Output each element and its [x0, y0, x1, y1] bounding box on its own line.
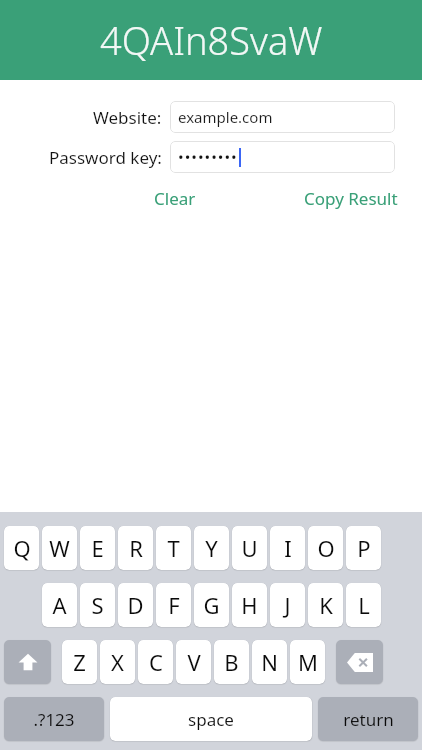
button[interactable]: M — [290, 640, 325, 684]
button[interactable]: K — [308, 583, 343, 627]
staticText: P — [357, 533, 371, 563]
button[interactable]: return — [318, 697, 418, 741]
staticText: Clear — [154, 187, 196, 210]
staticText: Y — [205, 533, 218, 563]
staticText: S — [91, 590, 104, 620]
staticText: V — [187, 647, 201, 677]
staticText: J — [284, 590, 291, 620]
staticText: E — [91, 533, 104, 563]
button[interactable]: E — [80, 526, 115, 570]
button[interactable]: Copy Result — [300, 183, 402, 214]
staticText: Copy Result — [304, 187, 398, 210]
staticText: Q — [13, 533, 31, 563]
staticText: F — [168, 590, 180, 620]
button[interactable]: H — [232, 583, 267, 627]
staticText: H — [241, 590, 258, 620]
button[interactable]: W — [42, 526, 77, 570]
staticText: D — [127, 590, 144, 620]
button[interactable]: G — [194, 583, 229, 627]
staticText: A — [52, 590, 67, 620]
staticText: W — [49, 533, 70, 563]
button[interactable]: C — [138, 640, 173, 684]
button[interactable]: Z — [62, 640, 97, 684]
button[interactable]: N — [252, 640, 287, 684]
staticText: U — [241, 533, 258, 563]
staticText: return — [343, 708, 394, 731]
staticText: example.com — [178, 107, 273, 127]
button[interactable]: I — [270, 526, 305, 570]
staticText: K — [319, 590, 333, 620]
staticText: G — [203, 590, 220, 620]
staticText: R — [129, 533, 143, 563]
button[interactable]: V — [176, 640, 211, 684]
button[interactable]: D — [118, 583, 153, 627]
button[interactable]: Shift — [4, 640, 51, 684]
button[interactable]: .?123 — [4, 697, 104, 741]
staticText: ••••••••• — [178, 147, 238, 167]
button[interactable]: Backspace — [336, 640, 383, 684]
staticText: B — [224, 647, 239, 677]
button[interactable]: example.com — [170, 101, 395, 133]
staticText: C — [149, 647, 163, 677]
staticText: X — [111, 647, 124, 677]
button[interactable]: U — [232, 526, 267, 570]
staticText: N — [261, 647, 278, 677]
button[interactable]: space — [110, 697, 312, 741]
button[interactable]: Q — [4, 526, 39, 570]
staticText: L — [358, 590, 370, 620]
staticText: Z — [73, 647, 86, 677]
staticText: Password key: — [49, 146, 162, 169]
button[interactable]: S — [80, 583, 115, 627]
staticText: I — [284, 533, 292, 563]
button[interactable]: B — [214, 640, 249, 684]
button[interactable]: F — [156, 583, 191, 627]
button[interactable]: ••••••••• — [170, 141, 395, 173]
button[interactable]: A — [42, 583, 77, 627]
button[interactable]: J — [270, 583, 305, 627]
staticText: Website: — [93, 106, 162, 129]
staticText: 4QAIn8SvaW — [100, 14, 323, 66]
staticText: T — [167, 533, 180, 563]
button[interactable]: T — [156, 526, 191, 570]
button[interactable]: P — [346, 526, 381, 570]
button[interactable]: X — [100, 640, 135, 684]
button[interactable]: O — [308, 526, 343, 570]
button[interactable]: Clear — [150, 183, 200, 214]
button[interactable]: Y — [194, 526, 229, 570]
staticText: .?123 — [33, 708, 75, 731]
button[interactable]: R — [118, 526, 153, 570]
staticText: space — [188, 708, 234, 731]
staticText: O — [317, 533, 335, 563]
staticText: M — [298, 647, 318, 677]
button[interactable]: L — [346, 583, 381, 627]
